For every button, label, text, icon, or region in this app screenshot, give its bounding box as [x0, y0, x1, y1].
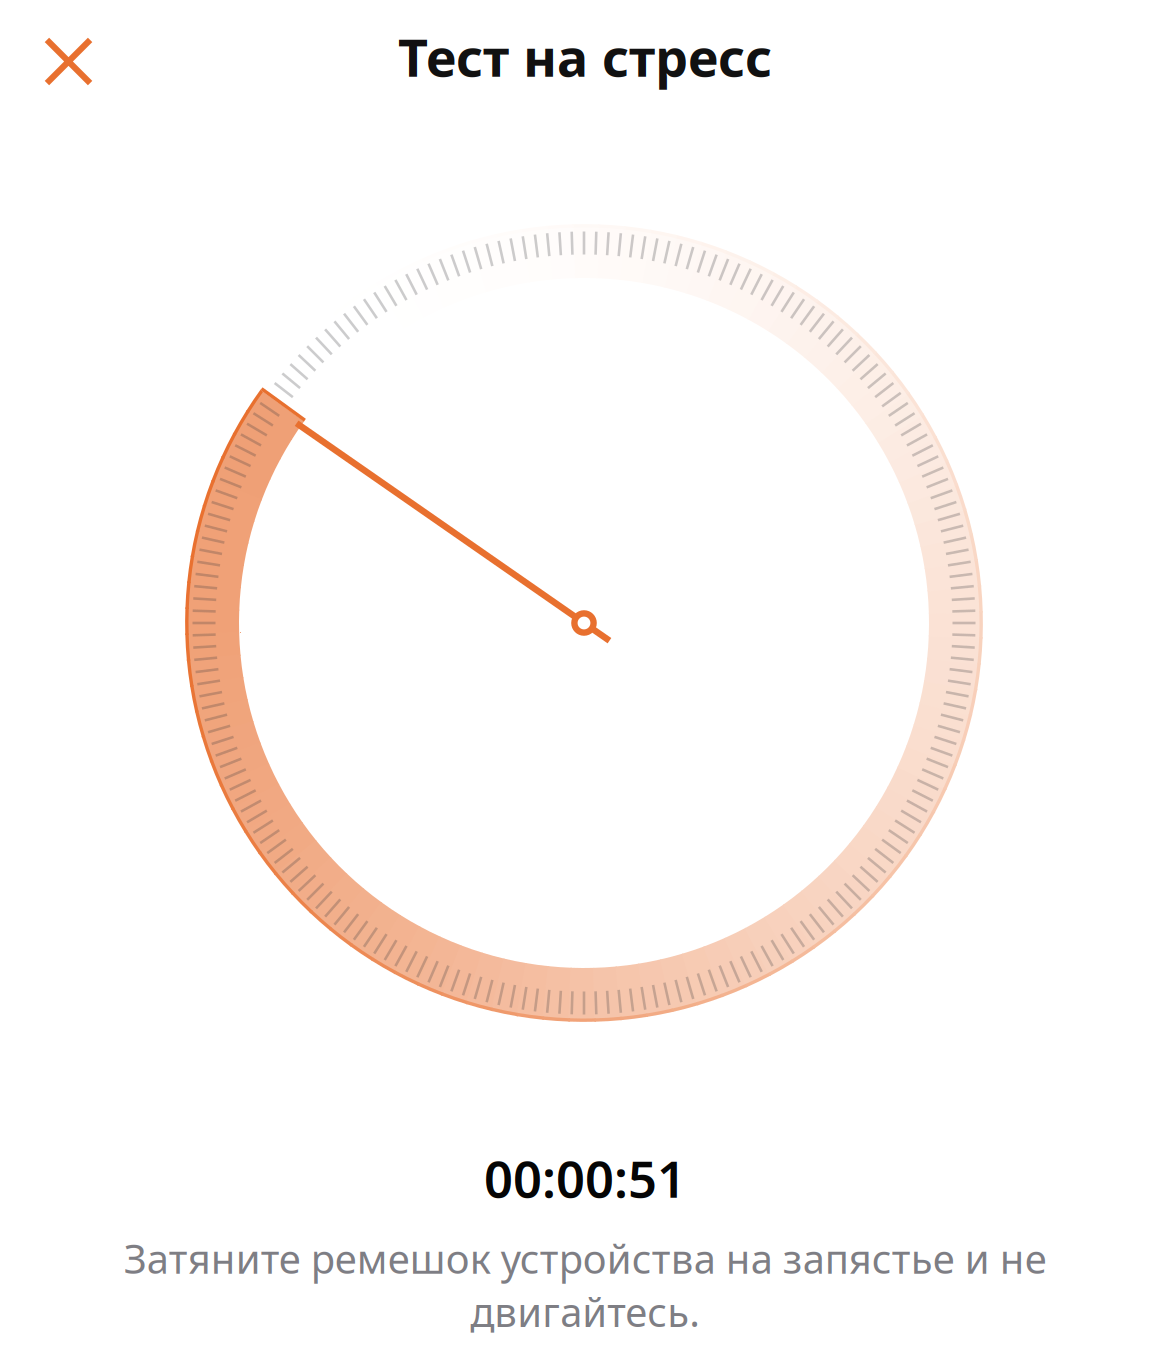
staticText: 00:00:51 — [484, 1144, 686, 1212]
staticText: Тест на стресс — [398, 22, 772, 91]
staticText: Затяните ремешок устройства на запястье … — [123, 1232, 1046, 1338]
button[interactable]: Close — [0, 14, 115, 99]
